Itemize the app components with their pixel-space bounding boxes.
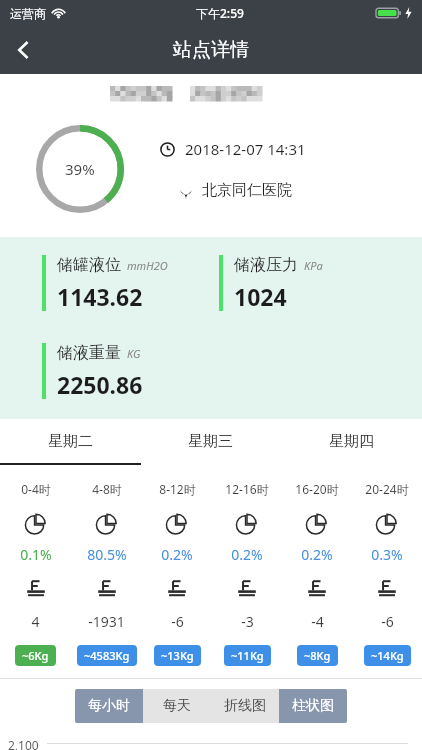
staticText: 储液重量	[57, 343, 121, 363]
staticText: 2018-12-07 14:31	[185, 139, 306, 159]
staticText: 站点详情	[173, 38, 249, 62]
staticText: 北京同仁医院	[202, 181, 292, 200]
staticText: 下午2:59	[196, 5, 244, 21]
staticText: 星期二	[48, 432, 93, 451]
staticText: 4-8时	[92, 481, 122, 497]
staticText: 0-4时	[21, 481, 51, 497]
staticText: 0.2%	[161, 545, 193, 564]
staticText: ~6Kg	[22, 648, 49, 663]
staticText: -1931	[88, 612, 125, 631]
staticText: 储液压力	[234, 255, 298, 275]
staticText: ~13Kg	[161, 648, 194, 663]
staticText: ~11Kg	[231, 648, 264, 663]
staticText: 4	[31, 612, 40, 631]
staticText: 柱状图	[292, 697, 334, 715]
staticText: 星期三	[188, 432, 233, 451]
button[interactable]: ~14Kg	[364, 645, 411, 666]
button[interactable]: ~11Kg	[224, 645, 271, 666]
button[interactable]: 柱状图	[279, 689, 347, 723]
staticText: 8-12时	[159, 481, 196, 497]
staticText: 1024	[234, 281, 287, 311]
staticText: 20-24时	[365, 481, 409, 497]
staticText: -3	[241, 612, 254, 631]
button[interactable]: 星期三	[140, 419, 281, 463]
button[interactable]: 每小时	[75, 689, 143, 723]
staticText: mmH2O	[127, 258, 168, 273]
staticText: 每天	[163, 697, 191, 715]
staticText: 39%	[65, 159, 95, 179]
staticText: -4	[311, 612, 324, 631]
staticText: 运营商	[10, 6, 46, 21]
staticText: 2,100	[8, 737, 39, 750]
staticText: 80.5%	[87, 545, 127, 564]
button[interactable]: 每天	[143, 689, 211, 723]
button[interactable]: 返回	[0, 26, 48, 74]
staticText: 星期四	[329, 432, 374, 451]
staticText: 12-16时	[225, 481, 269, 497]
staticText: 折线图	[224, 697, 266, 715]
staticText: KPa	[304, 258, 323, 273]
button[interactable]: ~4583Kg	[77, 645, 137, 666]
staticText: 0.1%	[20, 545, 52, 564]
button[interactable]: 折线图	[211, 689, 279, 723]
staticText: 0.2%	[301, 545, 333, 564]
staticText: ~14Kg	[371, 648, 404, 663]
button[interactable]: 星期二	[0, 419, 140, 463]
staticText: 0.2%	[231, 545, 263, 564]
staticText: 0.3%	[371, 545, 403, 564]
staticText: 1143.62	[57, 281, 143, 311]
button[interactable]: ~13Kg	[154, 645, 201, 666]
button[interactable]: ~8Kg	[297, 645, 338, 666]
staticText: 16-20时	[295, 481, 339, 497]
staticText: KG	[127, 346, 141, 361]
staticText: -6	[381, 612, 394, 631]
staticText: 2250.86	[57, 369, 143, 399]
staticText: 每小时	[88, 697, 130, 715]
staticText: -6	[171, 612, 184, 631]
staticText: ~8Kg	[304, 648, 331, 663]
staticText: 储罐液位	[57, 255, 121, 275]
staticText: ~4583Kg	[84, 648, 130, 663]
button[interactable]: ~6Kg	[15, 645, 56, 666]
button[interactable]: 星期四	[281, 419, 422, 463]
